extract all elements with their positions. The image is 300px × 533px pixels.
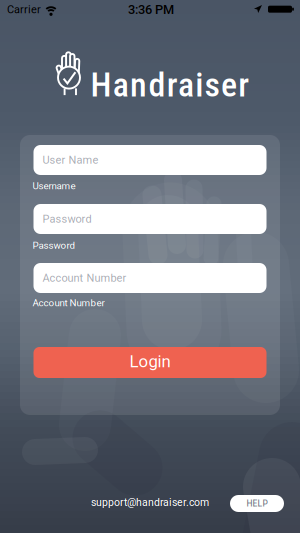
button[interactable]: User Name [33, 145, 266, 175]
staticText: Account Number [32, 297, 104, 309]
button[interactable]: Password [33, 204, 266, 234]
button[interactable]: Account Number [33, 263, 266, 293]
staticText: User Name [42, 154, 98, 166]
button[interactable]: Login [33, 347, 266, 378]
staticText: Carrier [7, 3, 41, 16]
staticText: Password [32, 240, 75, 251]
staticText: Password [42, 213, 91, 225]
button[interactable]: Help [230, 495, 284, 512]
staticText: 3:36 PM [128, 2, 174, 17]
staticText: support@handraiser.com [91, 496, 209, 509]
staticText: Login [129, 352, 170, 371]
button[interactable]: support@handraiser.com [91, 496, 209, 509]
staticText: Handraiser [90, 65, 249, 105]
staticText: Username [32, 180, 75, 192]
staticText: HELP [246, 498, 267, 508]
staticText: Account Number [42, 272, 126, 284]
